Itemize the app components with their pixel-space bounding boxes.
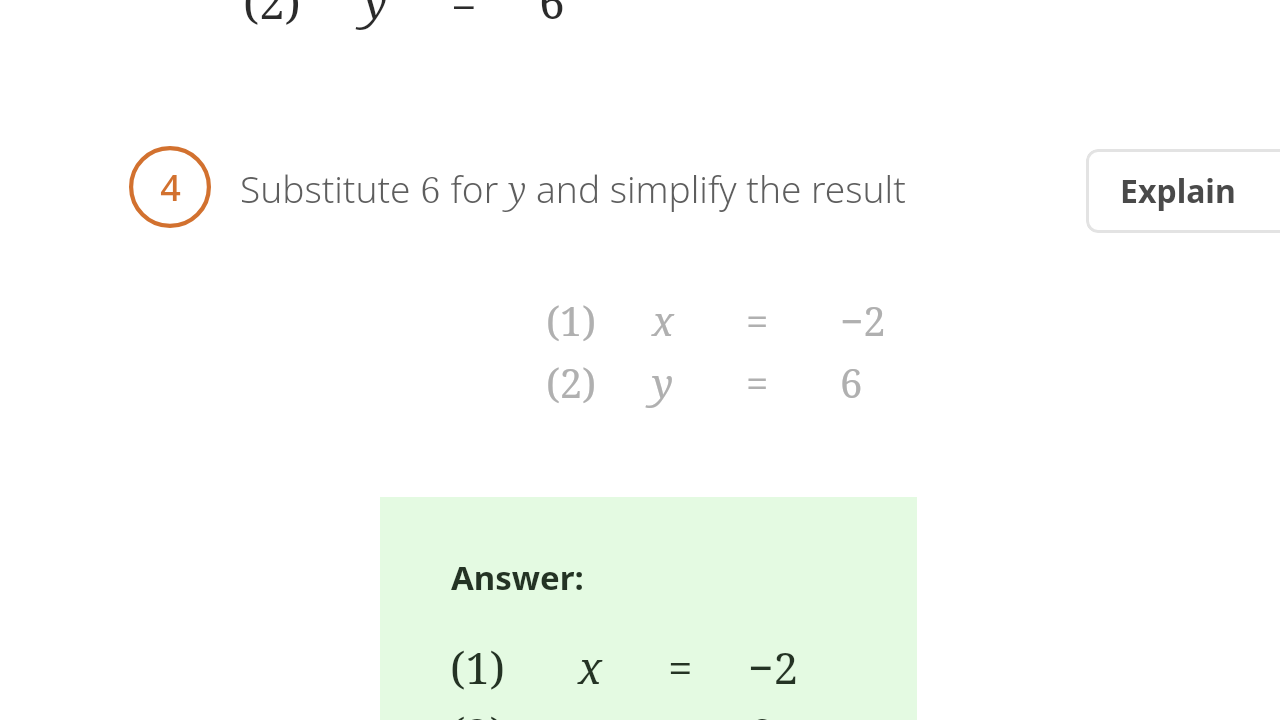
staticText: Substitute 6 for y and simplify the resu… — [240, 163, 906, 213]
staticText: 6 — [539, 0, 565, 33]
staticText: = — [746, 293, 769, 347]
staticText: 4 — [160, 163, 181, 212]
staticText: = — [668, 637, 693, 697]
staticText: (2) — [243, 0, 301, 33]
staticText: (1) — [546, 293, 597, 347]
staticText: (1) — [450, 637, 506, 697]
staticText: 6 — [840, 355, 863, 409]
staticText: x — [652, 293, 674, 347]
staticText: Answer: — [451, 555, 584, 600]
staticText: −2 — [748, 637, 799, 697]
button[interactable]: 4 — [129, 146, 211, 228]
staticText: (2) — [546, 355, 597, 409]
staticText: = — [451, 0, 477, 33]
staticText: y — [363, 0, 388, 33]
staticText: x — [578, 637, 603, 697]
button[interactable]: Explain — [1086, 149, 1280, 233]
staticText: Explain — [1120, 169, 1236, 213]
staticText: y — [652, 355, 674, 409]
staticText: (2) — [450, 703, 506, 720]
staticText: = — [746, 355, 769, 409]
staticText: 6 — [748, 703, 773, 720]
staticText: −2 — [840, 293, 886, 347]
